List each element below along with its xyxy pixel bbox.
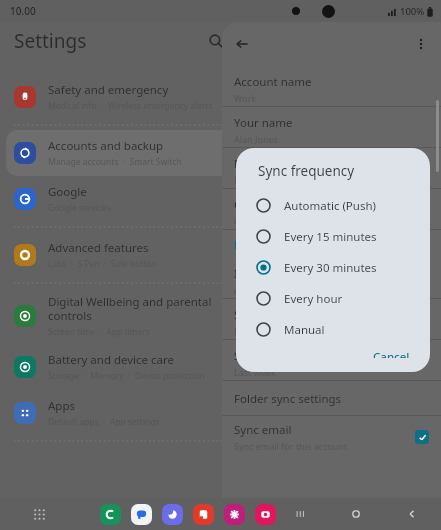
- staticText: Labs · S Pen · Side button: [48, 258, 157, 270]
- staticText: C: [234, 197, 242, 213]
- staticText: A: [234, 284, 240, 296]
- button[interactable]: Recents: [289, 503, 311, 525]
- staticText: Google services: [48, 202, 111, 214]
- staticText: Sync email: [234, 422, 292, 438]
- staticText: Advanced features: [48, 240, 149, 256]
- button[interactable]: Battery and device care: [6, 344, 435, 390]
- staticText: Work: [234, 92, 257, 104]
- staticText: Apps: [48, 398, 76, 414]
- staticText: Every hour: [284, 291, 343, 307]
- button[interactable]: Gallery: [224, 504, 245, 525]
- staticText: Last week: [234, 366, 276, 378]
- button[interactable]: Back: [222, 24, 262, 64]
- staticText: Cancel: [373, 349, 410, 358]
- staticText: M: [234, 156, 245, 172]
- staticText: Alan Jones: [234, 133, 278, 145]
- button[interactable]: Accounts and backup: [6, 130, 435, 176]
- button[interactable]: Digital Wellbeing and parental controls: [6, 288, 435, 344]
- button[interactable]: Internet: [162, 504, 183, 525]
- button[interactable]: M: [222, 148, 441, 188]
- staticText: 10.00: [10, 4, 36, 18]
- button[interactable]: Every 30 minutes: [236, 252, 430, 283]
- staticText: Folder sync settings: [234, 391, 342, 407]
- staticText: Every 15 minutes: [284, 229, 377, 245]
- staticText: Medical info · Wireless emergency alerts: [48, 100, 213, 112]
- staticText: Sync frequency: [258, 162, 355, 180]
- staticText: E: [234, 325, 240, 337]
- button[interactable]: Back: [401, 503, 423, 525]
- button[interactable]: Messages: [131, 504, 152, 525]
- staticText: Safety and emergency: [48, 82, 169, 98]
- button[interactable]: Safety and emergency: [6, 74, 435, 120]
- button[interactable]: Folder sync settings: [222, 381, 441, 415]
- staticText: C: [234, 215, 240, 227]
- staticText: Your name: [234, 115, 293, 131]
- button[interactable]: Every hour: [236, 283, 430, 314]
- staticText: Google: [48, 184, 87, 200]
- staticText: Sync email for this account: [234, 440, 348, 452]
- button[interactable]: Sync emails from:: [222, 340, 441, 380]
- button[interactable]: Apps: [6, 390, 435, 436]
- staticText: Screen time · App timers: [48, 326, 150, 338]
- button[interactable]: Account name: [222, 66, 441, 106]
- staticText: N: [234, 174, 241, 186]
- staticText: Manual: [284, 322, 325, 338]
- button[interactable]: Cancel: [367, 345, 416, 362]
- staticText: Battery and device care: [48, 352, 175, 368]
- staticText: In: [234, 266, 246, 282]
- button[interactable]: Google: [6, 176, 435, 222]
- button[interactable]: S: [222, 299, 441, 339]
- staticText: Settings: [14, 28, 87, 54]
- button[interactable]: Notes: [193, 504, 214, 525]
- staticText: Automatic (Push): [284, 198, 376, 214]
- staticText: Every 30 minutes: [284, 260, 377, 276]
- staticText: 100%: [400, 5, 425, 18]
- staticText: D: [234, 238, 242, 252]
- button[interactable]: More options: [401, 24, 441, 64]
- button[interactable]: Your name: [222, 107, 441, 147]
- staticText: Account name: [234, 74, 312, 90]
- button[interactable]: In: [222, 258, 441, 298]
- button[interactable]: Search: [196, 22, 236, 60]
- staticText: Storage · Memory · Device protection: [48, 370, 205, 382]
- button[interactable]: Automatic (Push): [236, 190, 430, 221]
- button[interactable]: Home: [345, 503, 367, 525]
- staticText: Digital Wellbeing and parental controls: [48, 294, 212, 324]
- button[interactable]: Camera: [255, 504, 276, 525]
- button[interactable]: Manual: [236, 314, 430, 345]
- staticText: Sync emails from:: [234, 348, 330, 364]
- button[interactable]: Every 15 minutes: [236, 221, 430, 252]
- staticText: S: [234, 307, 241, 323]
- staticText: Default apps · App settings: [48, 416, 160, 428]
- staticText: Manage accounts · Smart Switch: [48, 156, 182, 168]
- button[interactable]: Phone: [100, 504, 121, 525]
- button[interactable]: C: [222, 189, 441, 229]
- button[interactable]: Advanced features: [6, 232, 435, 278]
- staticText: Accounts and backup: [48, 138, 164, 154]
- button[interactable]: Sync email: [222, 416, 441, 458]
- button[interactable]: Apps: [28, 503, 50, 525]
